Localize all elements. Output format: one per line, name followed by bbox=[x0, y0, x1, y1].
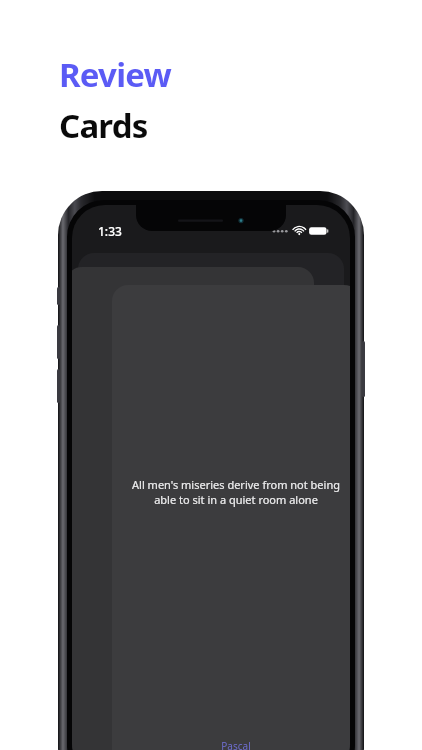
staticText: All men's miseries derive from not being… bbox=[126, 477, 346, 507]
other: Mute switch bbox=[57, 287, 60, 305]
staticText: Review bbox=[59, 52, 171, 97]
other: Volume down bbox=[57, 369, 60, 403]
other: Volume up bbox=[57, 325, 60, 359]
staticText: Cards bbox=[59, 103, 148, 148]
other: Power bbox=[362, 341, 365, 397]
button[interactable]: All men's miseries derive from not being… bbox=[112, 285, 350, 750]
staticText: You be bbox=[86, 475, 294, 506]
staticText: Pascal bbox=[112, 739, 350, 750]
button[interactable]: You be bbox=[72, 267, 314, 750]
button[interactable] bbox=[78, 253, 344, 733]
staticText: 1:33 bbox=[98, 223, 122, 239]
